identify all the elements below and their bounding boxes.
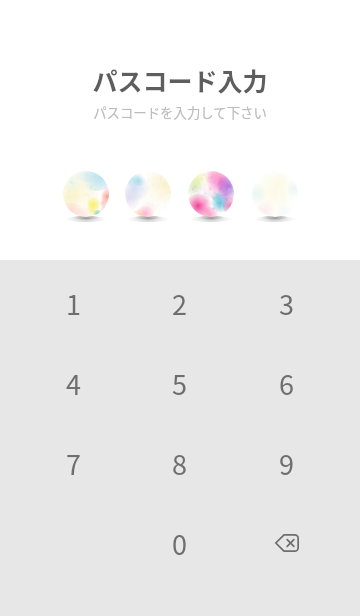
button[interactable]: 0 bbox=[126, 503, 233, 583]
staticText: 8 bbox=[172, 444, 187, 483]
button[interactable]: 4 bbox=[20, 343, 126, 423]
button[interactable]: Delete bbox=[233, 503, 340, 583]
staticText: 5 bbox=[172, 364, 187, 403]
button[interactable]: 8 bbox=[126, 423, 233, 503]
button[interactable]: 2 bbox=[126, 263, 233, 343]
staticText: パスコードを入力して下さい bbox=[93, 102, 267, 121]
button[interactable]: 5 bbox=[126, 343, 233, 423]
staticText: 7 bbox=[66, 444, 81, 483]
staticText: パスコード入力 bbox=[92, 62, 268, 98]
staticText: 9 bbox=[279, 444, 294, 483]
button[interactable]: 9 bbox=[233, 423, 340, 503]
staticText: 4 bbox=[66, 364, 81, 403]
button[interactable]: 6 bbox=[233, 343, 340, 423]
staticText: 3 bbox=[279, 284, 294, 323]
staticText: 0 bbox=[172, 524, 187, 563]
staticText: 6 bbox=[279, 364, 294, 403]
other: Delete bbox=[275, 534, 299, 552]
button[interactable]: 7 bbox=[20, 423, 126, 503]
staticText: 2 bbox=[172, 284, 187, 323]
staticText: 1 bbox=[66, 284, 81, 323]
button[interactable]: 3 bbox=[233, 263, 340, 343]
button[interactable]: 1 bbox=[20, 263, 126, 343]
